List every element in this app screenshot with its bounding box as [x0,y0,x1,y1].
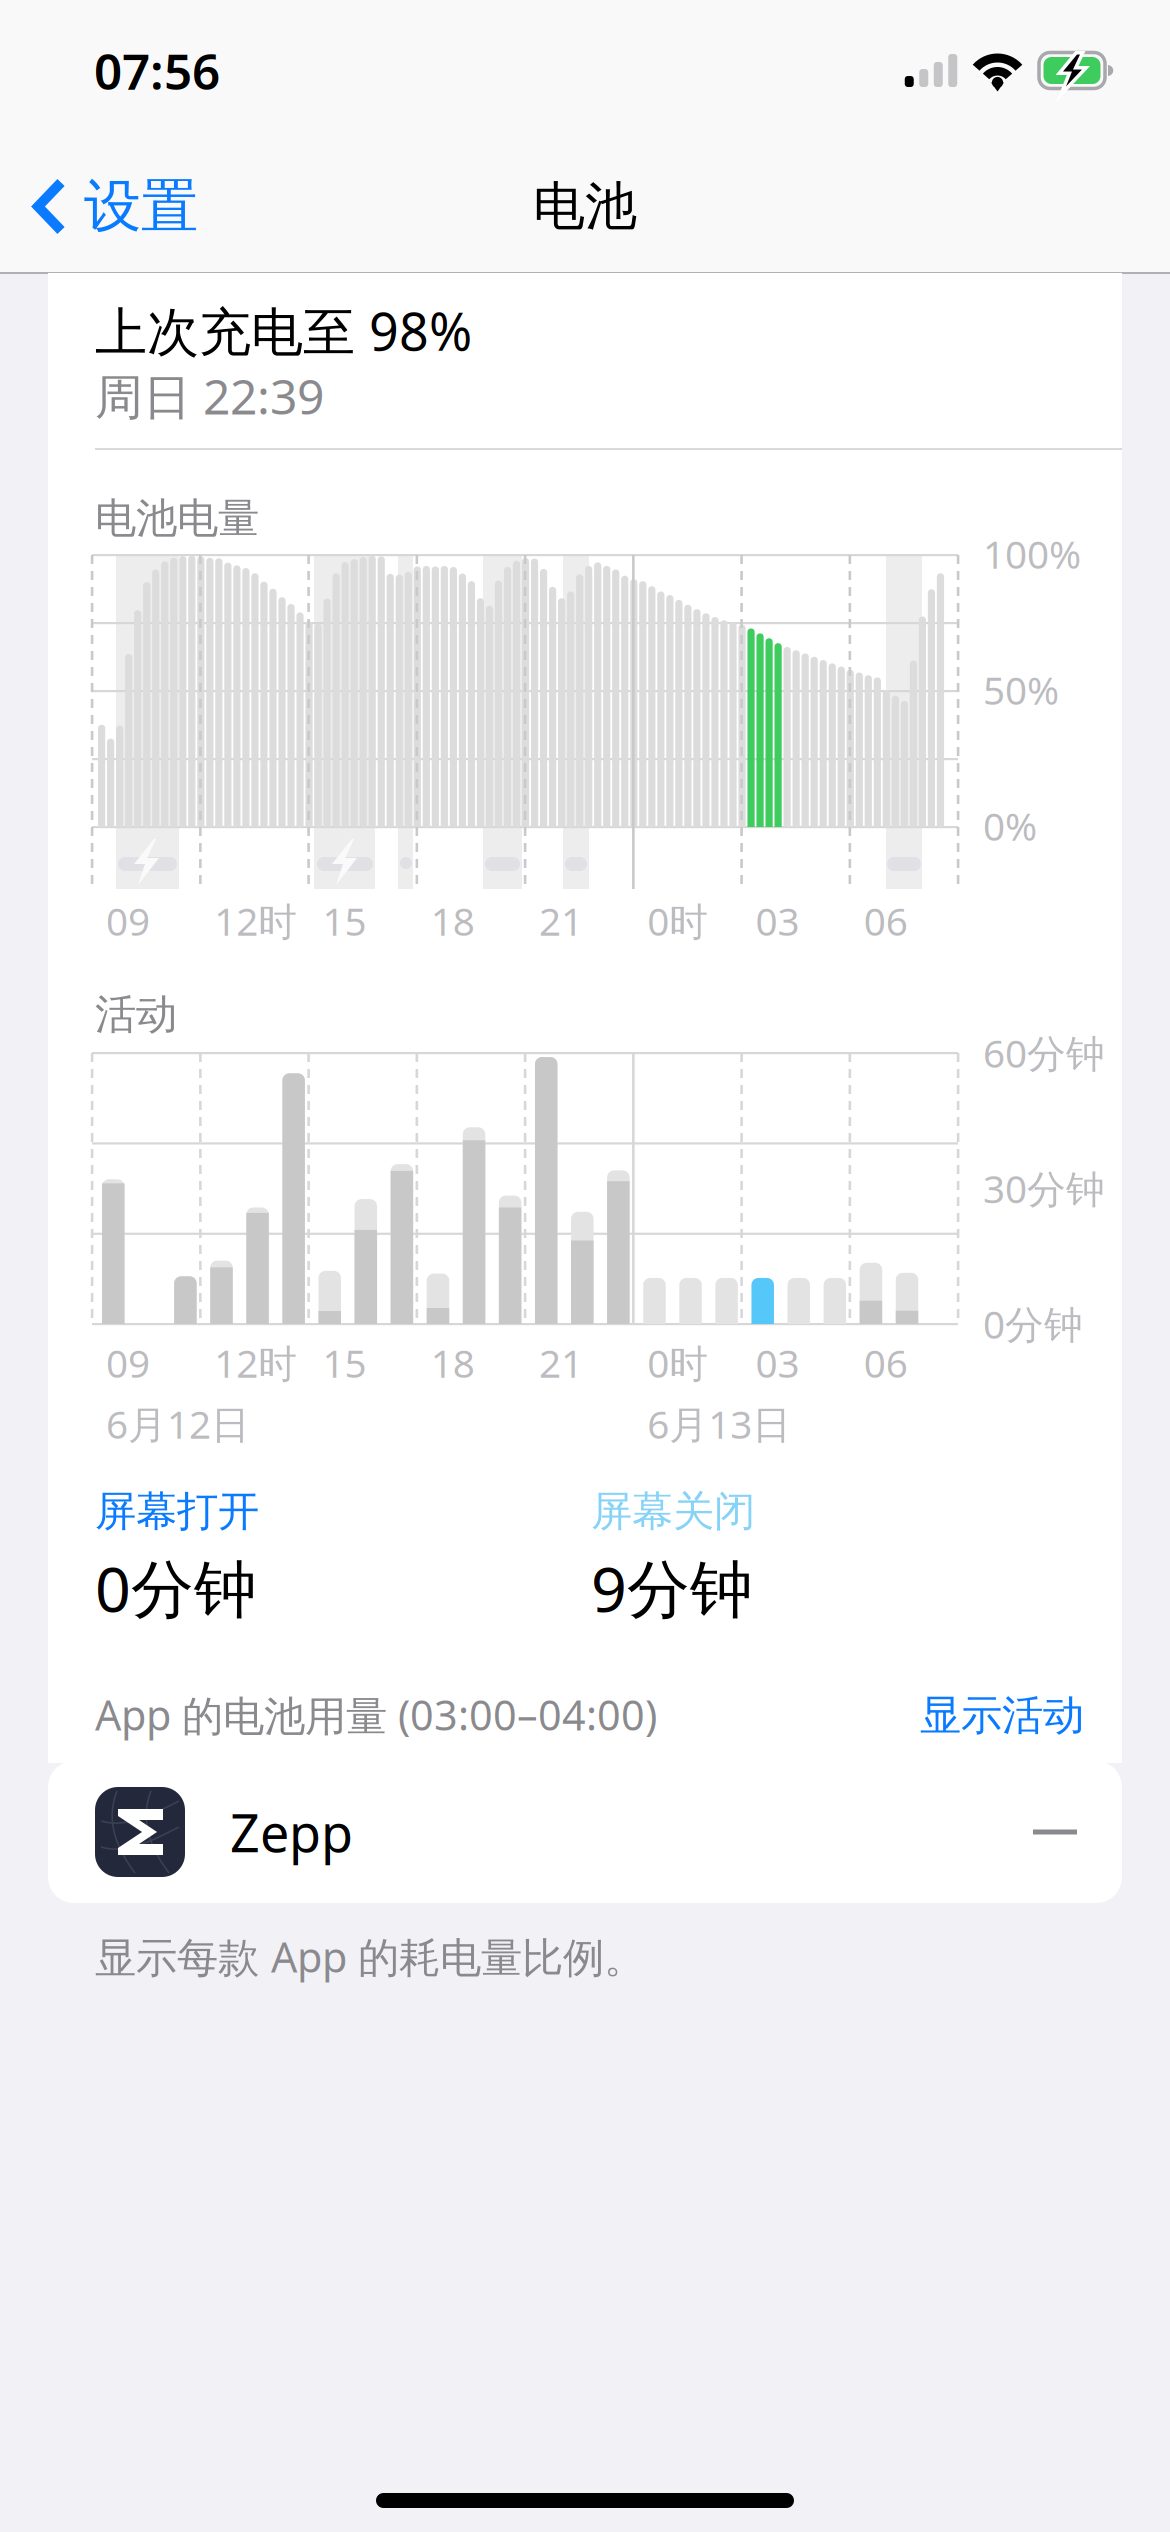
staticText: 显示每款 App 的耗电量比例。 [95,1929,645,1984]
staticText: 显示活动 [920,1690,1084,1741]
staticText: 18 [431,895,475,946]
staticText: 03 [755,1337,799,1388]
staticText: 15 [322,895,366,946]
staticText: 屏幕打开 [95,1486,259,1537]
staticText: 0分钟 [95,1546,257,1629]
staticText: 9分钟 [591,1546,753,1629]
staticText: 0时 [647,895,708,946]
staticText: 100% [983,528,1081,579]
staticText: Zepp [230,1797,353,1867]
staticText: 21 [539,1337,583,1388]
staticText: 周日 22:39 [95,364,324,428]
staticText: 30分钟 [983,1162,1105,1214]
staticText: 09 [106,895,150,946]
button[interactable]: 显示活动 [910,1680,1094,1751]
staticText: 0时 [647,1337,708,1388]
staticText: 上次充电至 98% [95,296,472,365]
staticText: 06 [864,1337,908,1388]
staticText: 6月12日 [106,1398,250,1449]
staticText: 0% [983,800,1037,851]
staticText: 50% [983,664,1059,715]
button[interactable]: 设置 [0,157,214,256]
staticText: 电池电量 [95,493,259,544]
staticText: App 的电池用量 (03:00–04:00) [95,1687,657,1742]
staticText: 12时 [214,895,297,946]
staticText: 03 [755,895,799,946]
staticText: 电池 [533,175,637,238]
staticText: 21 [539,895,583,946]
staticText: 09 [106,1337,150,1388]
button[interactable]: Zepp [48,1761,1122,1903]
staticText: 活动 [95,989,177,1040]
staticText: 6月13日 [647,1398,791,1449]
staticText: 屏幕关闭 [591,1486,755,1537]
staticText: 12时 [214,1337,297,1388]
staticText: 60分钟 [983,1027,1105,1078]
staticText: 18 [431,1337,475,1388]
staticText: 0分钟 [983,1298,1083,1349]
staticText: 06 [864,895,908,946]
staticText: 设置 [84,171,198,242]
staticText: 15 [322,1337,366,1388]
staticText: 07:56 [94,38,220,103]
